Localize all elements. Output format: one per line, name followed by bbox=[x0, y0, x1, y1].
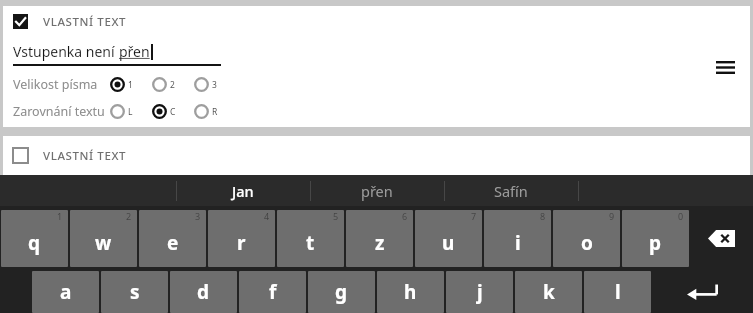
staticText: o bbox=[581, 230, 593, 256]
staticText: j bbox=[477, 279, 483, 305]
staticText: 1 bbox=[57, 210, 63, 222]
button[interactable]: VLASTNÍ TEXT bbox=[3, 6, 750, 37]
staticText: 0 bbox=[678, 210, 684, 222]
staticText: 2 bbox=[126, 210, 132, 222]
button[interactable]: 8 bbox=[484, 210, 551, 267]
staticText: f bbox=[269, 279, 277, 305]
staticText: R bbox=[212, 106, 218, 118]
button[interactable]: 9 bbox=[553, 210, 620, 267]
staticText: z bbox=[375, 230, 385, 256]
staticText: Zarovnání textu bbox=[13, 103, 105, 120]
button[interactable]: Vstupenka není bbox=[3, 37, 750, 66]
staticText: Vstupenka není bbox=[13, 42, 119, 61]
staticText: Velikost písma bbox=[13, 76, 98, 93]
staticText: 3 bbox=[195, 210, 201, 222]
button[interactable]: d bbox=[170, 271, 237, 313]
staticText: s bbox=[130, 279, 140, 305]
staticText: e bbox=[167, 230, 179, 256]
staticText: Safín bbox=[494, 181, 528, 201]
staticText: u bbox=[442, 230, 455, 256]
staticText: d bbox=[197, 279, 210, 305]
button[interactable]: 1 bbox=[110, 71, 133, 98]
staticText: p bbox=[649, 230, 662, 256]
staticText: 8 bbox=[540, 210, 546, 222]
button[interactable]: 3 bbox=[194, 71, 217, 98]
staticText: 3 bbox=[212, 79, 217, 91]
button[interactable]: j bbox=[446, 271, 513, 313]
button[interactable]: L bbox=[110, 98, 133, 125]
staticText: l bbox=[615, 279, 621, 305]
staticText: 2 bbox=[170, 79, 175, 91]
staticText: VLASTNÍ TEXT bbox=[43, 148, 127, 164]
button[interactable]: 7 bbox=[415, 210, 482, 267]
button[interactable]: Enter bbox=[652, 271, 753, 313]
button[interactable]: VLASTNÍ TEXT bbox=[3, 136, 750, 175]
staticText: i bbox=[515, 230, 521, 256]
button[interactable]: Jan bbox=[176, 175, 310, 206]
button[interactable]: C bbox=[152, 98, 176, 125]
button[interactable]: g bbox=[308, 271, 375, 313]
button[interactable]: Safín bbox=[444, 175, 578, 206]
staticText: C bbox=[170, 106, 176, 118]
staticText: k bbox=[543, 279, 555, 305]
staticText: q bbox=[28, 230, 41, 256]
button[interactable]: 6 bbox=[346, 210, 413, 267]
staticText: 9 bbox=[609, 210, 615, 222]
button[interactable]: R bbox=[194, 98, 218, 125]
staticText: w bbox=[95, 230, 112, 256]
staticText: a bbox=[60, 279, 72, 305]
button[interactable]: Backspace bbox=[690, 210, 753, 267]
button[interactable]: s bbox=[101, 271, 168, 313]
staticText: 4 bbox=[264, 210, 270, 222]
button[interactable]: 2 bbox=[70, 210, 137, 267]
staticText: Jan bbox=[232, 181, 254, 201]
button[interactable]: 5 bbox=[277, 210, 344, 267]
staticText: přen bbox=[119, 42, 150, 61]
button[interactable]: f bbox=[239, 271, 306, 313]
button[interactable]: 0 bbox=[622, 210, 689, 267]
button[interactable]: k bbox=[515, 271, 582, 313]
staticText: 6 bbox=[402, 210, 408, 222]
button[interactable]: 1 bbox=[1, 210, 68, 267]
staticText: VLASTNÍ TEXT bbox=[43, 14, 127, 30]
staticText: h bbox=[404, 279, 417, 305]
staticText: t bbox=[306, 230, 315, 256]
button[interactable]: Reorder item bbox=[707, 49, 743, 85]
button[interactable]: 2 bbox=[152, 71, 175, 98]
staticText: 1 bbox=[128, 79, 133, 91]
staticText: r bbox=[237, 230, 246, 256]
button[interactable]: l bbox=[584, 271, 651, 313]
staticText: 5 bbox=[333, 210, 339, 222]
staticText: g bbox=[335, 279, 348, 305]
button[interactable]: 3 bbox=[139, 210, 206, 267]
button[interactable]: 4 bbox=[208, 210, 275, 267]
button[interactable]: a bbox=[32, 271, 99, 313]
button[interactable]: přen bbox=[310, 175, 444, 206]
staticText: přen bbox=[361, 181, 393, 201]
staticText: 7 bbox=[471, 210, 477, 222]
button[interactable]: h bbox=[377, 271, 444, 313]
staticText: L bbox=[128, 106, 133, 118]
